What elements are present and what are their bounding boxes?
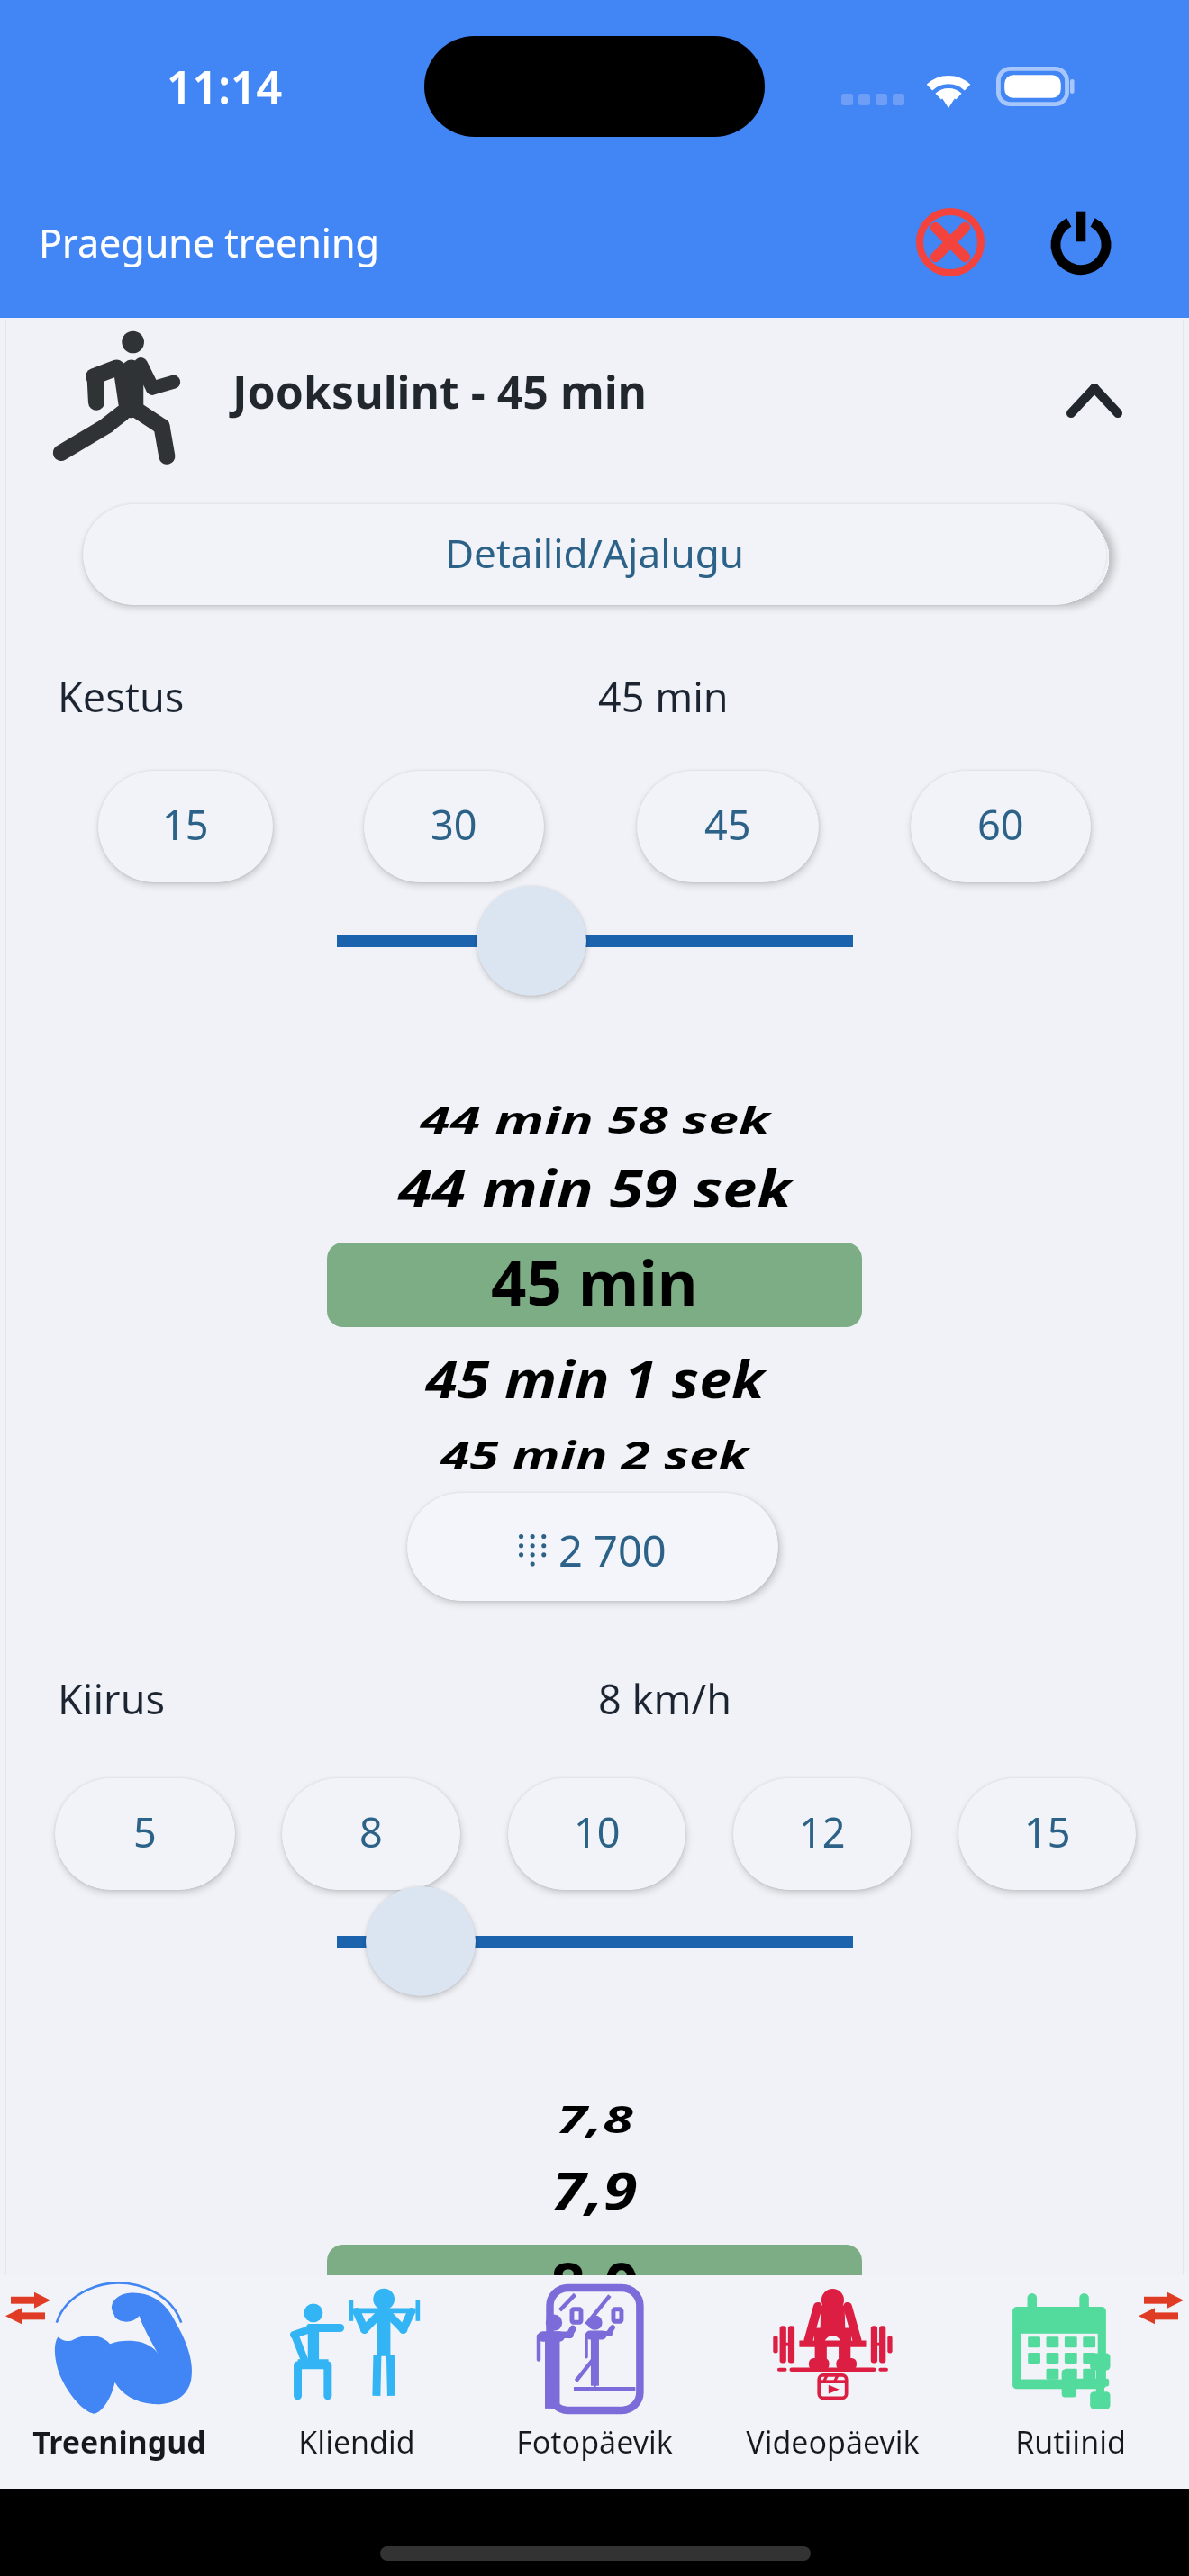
staticText: Detailid/Ajalugu xyxy=(445,526,744,580)
button[interactable]: Adjust value xyxy=(366,1886,476,1996)
staticText: 45 min 2 sek xyxy=(440,1428,749,1481)
staticText: 44 min 59 sek xyxy=(398,1152,792,1223)
button[interactable]: 45 min xyxy=(327,1243,862,1327)
button[interactable]: Kliendid xyxy=(238,2275,476,2489)
button[interactable]: Detailid/Ajalugu xyxy=(83,504,1106,605)
staticText: 7,8 xyxy=(557,2093,633,2144)
button[interactable]: 15 xyxy=(958,1778,1136,1890)
button[interactable]: 12 xyxy=(733,1778,911,1890)
button[interactable]: 15 xyxy=(98,771,273,882)
staticText: 8,0 xyxy=(550,2245,640,2326)
button[interactable]: 10 xyxy=(508,1778,685,1890)
button[interactable]: Videopäevik xyxy=(713,2275,951,2489)
button[interactable]: Power xyxy=(1025,183,1137,294)
button[interactable]: 2 700 xyxy=(407,1493,778,1601)
button[interactable]: Jooksulint - 45 min xyxy=(216,335,937,463)
button[interactable]: Adjust value xyxy=(477,886,586,996)
button[interactable]: 8 xyxy=(282,1778,460,1890)
button[interactable]: 60 xyxy=(911,771,1091,882)
staticText: 44 min 58 sek xyxy=(420,1094,770,1144)
staticText: Treeningud xyxy=(32,2421,206,2463)
staticText: 7,9 xyxy=(551,2155,638,2225)
staticText: 10 xyxy=(574,1804,621,1859)
staticText: 2 700 xyxy=(558,1522,667,1579)
button[interactable]: Fotopäevik xyxy=(476,2275,713,2489)
staticText: 60 xyxy=(977,797,1024,852)
button[interactable]: 8,0 xyxy=(327,2245,862,2329)
staticText: Rutiinid xyxy=(1015,2421,1126,2463)
staticText: 45 min xyxy=(598,669,729,724)
button[interactable]: 30 xyxy=(364,771,544,882)
staticText: Videopäevik xyxy=(746,2421,920,2463)
staticText: 45 min xyxy=(491,1243,698,1324)
staticText: Fotopäevik xyxy=(516,2421,673,2463)
staticText: 12 xyxy=(799,1804,846,1859)
staticText: 8 km/h xyxy=(598,1671,732,1726)
staticText: 11:14 xyxy=(167,56,283,117)
staticText: 15 xyxy=(1024,1804,1071,1859)
staticText: 45 xyxy=(704,797,751,852)
button[interactable]: Rutiinid xyxy=(951,2275,1189,2489)
staticText: Kiirus xyxy=(58,1671,166,1726)
button[interactable]: Collapse xyxy=(1045,351,1144,450)
staticText: Praegune treening xyxy=(39,216,379,269)
button[interactable]: 5 xyxy=(55,1778,235,1890)
staticText: 45 min 1 sek xyxy=(426,1343,764,1414)
staticText: 5 xyxy=(133,1804,157,1859)
button[interactable]: Treeningud xyxy=(0,2275,238,2489)
button[interactable]: Close workout xyxy=(894,186,1006,298)
staticText: Kliendid xyxy=(298,2421,415,2463)
staticText: Kestus xyxy=(58,669,185,724)
button[interactable]: 45 xyxy=(637,771,819,882)
staticText: 30 xyxy=(431,797,477,852)
staticText: 8 xyxy=(359,1804,383,1859)
staticText: Jooksulint - 45 min xyxy=(232,361,648,422)
staticText: 15 xyxy=(162,797,209,852)
